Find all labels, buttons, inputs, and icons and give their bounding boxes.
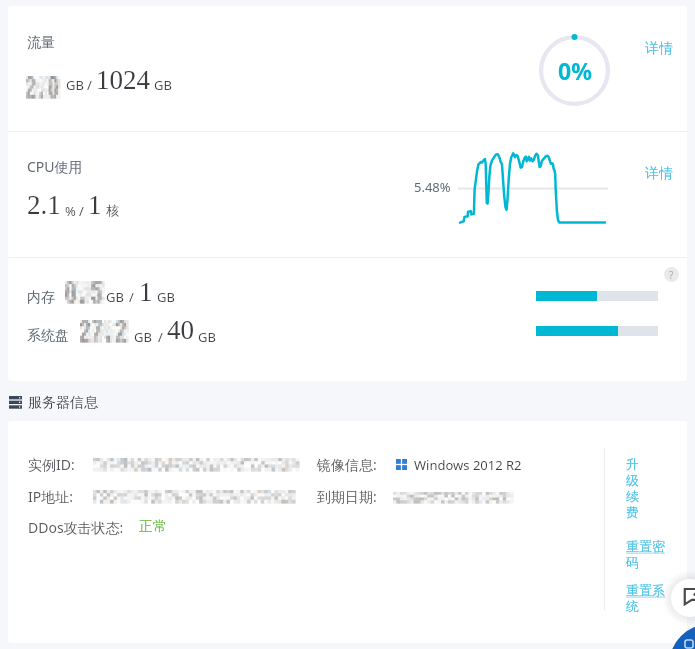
staticText: 系统盘 [27, 327, 69, 345]
button[interactable]: 重置密 [626, 538, 665, 570]
staticText: / [158, 328, 163, 346]
staticText: % [65, 202, 76, 220]
button[interactable]: 详情 [641, 36, 677, 62]
staticText: 流量 [27, 34, 55, 52]
staticText: 核 [106, 202, 119, 218]
staticText: 40 [167, 315, 194, 345]
staticText: / [79, 202, 84, 220]
staticText: 级 [626, 472, 639, 488]
staticText: Windows 2012 R2 [414, 456, 522, 474]
staticText: 升 [626, 456, 639, 472]
staticText: ? [669, 268, 674, 282]
staticText: 码 [626, 554, 639, 570]
staticText: GB [66, 76, 84, 94]
staticText: 0% [558, 55, 592, 86]
staticText: GB [157, 288, 175, 306]
staticText: / [129, 288, 134, 306]
button[interactable]: 详情 [641, 161, 677, 187]
staticText: 1 [139, 277, 153, 307]
staticText: 正常 [139, 518, 167, 536]
staticText: 重置密 [626, 538, 665, 554]
staticText: GB [154, 76, 172, 94]
staticText: 1024 [96, 65, 150, 95]
staticText: 费 [626, 504, 639, 520]
staticText: 2.1 [27, 190, 61, 220]
staticText: 5.48% [414, 178, 451, 196]
staticText: 详情 [645, 40, 673, 58]
staticText: GB [106, 288, 124, 306]
staticText: 到期日期: [317, 487, 377, 506]
staticText: CPU使用 [27, 157, 83, 176]
staticText: 实例ID: [28, 455, 75, 474]
button[interactable]: 升 [626, 456, 639, 520]
staticText: GB [198, 328, 216, 346]
button[interactable]: Feedback [671, 579, 695, 617]
staticText: / [87, 76, 92, 94]
staticText: 镜像信息: [317, 455, 377, 474]
button[interactable]: Help [664, 267, 679, 282]
staticText: 服务器信息 [28, 394, 98, 412]
staticText: 1 [88, 190, 102, 220]
staticText: IP地址: [28, 487, 73, 506]
staticText: DDos攻击状态: [28, 518, 124, 537]
button[interactable]: Console [669, 624, 695, 649]
staticText: 内存 [27, 289, 55, 307]
staticText: 详情 [645, 165, 673, 183]
staticText: 续 [626, 488, 639, 504]
staticText: GB [134, 328, 152, 346]
staticText: 统 [626, 598, 639, 614]
button[interactable]: 重置系 [626, 582, 665, 614]
staticText: 重置系 [626, 582, 665, 598]
